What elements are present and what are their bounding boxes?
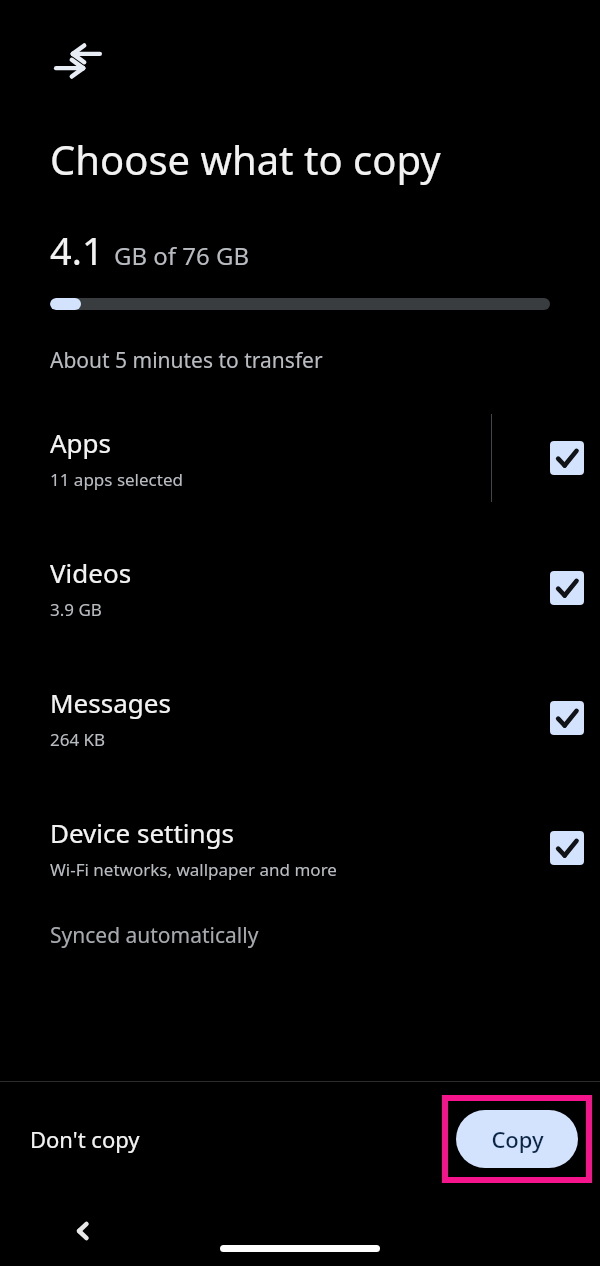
staticText: Messages <box>50 685 171 720</box>
button[interactable]: Messages <box>0 653 600 783</box>
staticText: Videos <box>50 555 132 590</box>
staticText: Copy <box>491 1124 544 1154</box>
button[interactable]: Don't copy <box>12 1112 158 1166</box>
staticText: 3.9 GB <box>50 598 102 621</box>
staticText: 11 apps selected <box>50 468 183 491</box>
staticText: Synced automatically <box>50 921 259 950</box>
staticText: 4.1 <box>50 224 104 276</box>
button[interactable]: Back <box>62 1210 104 1252</box>
button[interactable]: Copy <box>456 1110 578 1168</box>
button[interactable]: Videos <box>0 523 600 653</box>
button[interactable]: Transfer <box>50 38 106 84</box>
staticText: Don't copy <box>30 1124 140 1154</box>
staticText: About 5 minutes to transfer <box>50 346 323 375</box>
staticText: Device settings <box>50 815 235 850</box>
staticText: 264 KB <box>50 728 106 751</box>
staticText: GB of 76 GB <box>114 239 250 272</box>
staticText: Apps <box>50 425 112 460</box>
staticText: Choose what to copy <box>50 132 441 186</box>
button[interactable]: Apps <box>0 393 600 523</box>
staticText: Wi-Fi networks, wallpaper and more <box>50 858 337 881</box>
button[interactable]: Device settings <box>0 783 600 913</box>
